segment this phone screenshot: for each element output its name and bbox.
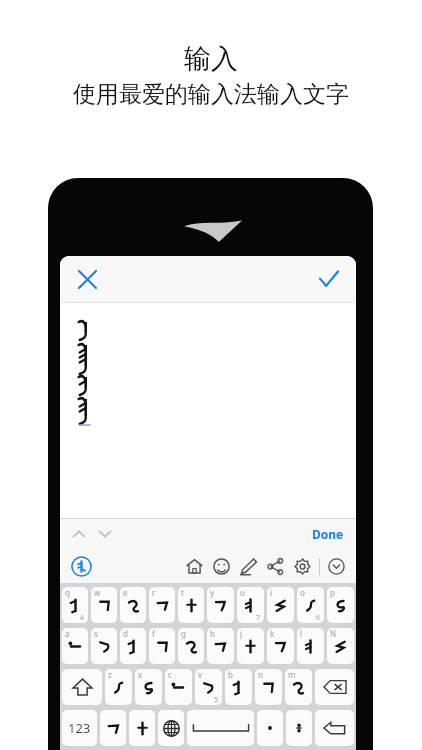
staticText: o [300, 587, 305, 598]
staticText: e [123, 587, 128, 598]
staticText: a [65, 628, 70, 639]
staticText: i [270, 587, 273, 598]
button[interactable]: l [297, 628, 324, 664]
staticText: N [330, 628, 337, 639]
button[interactable]: Next [92, 521, 118, 547]
staticText: x [138, 669, 143, 680]
staticText: 4 [80, 613, 85, 623]
button[interactable]: k [267, 628, 294, 664]
button[interactable]: delete [315, 669, 354, 705]
button[interactable]: r [149, 587, 175, 623]
staticText: v [198, 669, 203, 680]
button[interactable]: Settings [289, 553, 316, 580]
button[interactable]: colon [286, 710, 312, 746]
button[interactable]: Draw [235, 553, 262, 580]
button[interactable]: z [105, 669, 132, 705]
staticText: k [270, 628, 275, 639]
staticText: l [300, 628, 303, 639]
staticText: 使用最爱的输入法输入文字 [73, 80, 349, 109]
button[interactable]: Emoji [208, 553, 235, 580]
staticText: c [168, 669, 172, 680]
staticText: g [181, 628, 186, 639]
button[interactable]: x [135, 669, 162, 705]
button[interactable]: u [237, 587, 264, 623]
button[interactable]: Previous [66, 521, 92, 547]
button[interactable]: f [149, 628, 175, 664]
button[interactable]: shift [62, 669, 102, 705]
staticText: z [108, 669, 112, 680]
button[interactable]: globe [158, 710, 184, 746]
staticText: u [240, 587, 245, 598]
button[interactable]: a [62, 628, 88, 664]
staticText: w [94, 587, 101, 598]
staticText: j [240, 628, 243, 639]
button[interactable]: w [91, 587, 117, 623]
button[interactable]: e [120, 587, 146, 623]
button[interactable]: n [255, 669, 282, 705]
button[interactable]: Share [262, 553, 289, 580]
button[interactable]: i [267, 587, 294, 623]
button[interactable]: b [225, 669, 252, 705]
button[interactable]: d [120, 628, 146, 664]
button[interactable]: N [327, 628, 354, 664]
staticText: 输入 [184, 42, 238, 76]
button[interactable] [129, 710, 155, 746]
staticText: q [65, 587, 70, 598]
button[interactable] [100, 710, 126, 746]
button[interactable]: h [207, 628, 234, 664]
button[interactable]: p [327, 587, 354, 623]
staticText: 5 [214, 695, 219, 705]
button[interactable]: space [187, 710, 254, 746]
staticText: f [152, 628, 155, 639]
button[interactable]: c [165, 669, 192, 705]
button[interactable]: v [195, 669, 222, 705]
button[interactable]: s [91, 628, 117, 664]
staticText: b [228, 669, 233, 680]
button[interactable]: Hide keyboard [323, 553, 350, 580]
staticText: 123 [68, 719, 91, 737]
button[interactable]: g [178, 628, 204, 664]
staticText: y [210, 587, 215, 598]
staticText: 7 [256, 613, 261, 623]
staticText: Done [312, 526, 344, 542]
button[interactable]: Confirm [309, 259, 349, 299]
button[interactable]: Done [308, 523, 348, 545]
button[interactable]: j [237, 628, 264, 664]
button[interactable]: o [297, 587, 324, 623]
button[interactable]: y [207, 587, 234, 623]
staticText: n [258, 669, 263, 680]
staticText: m [288, 669, 296, 680]
button[interactable]: q [62, 587, 88, 623]
staticText: 6 [316, 613, 321, 623]
staticText: d [123, 628, 128, 639]
button[interactable]: m [285, 669, 312, 705]
button[interactable]: Home [181, 553, 208, 580]
staticText: t [181, 587, 184, 598]
staticText: h [210, 628, 215, 639]
staticText: s [94, 628, 98, 639]
button[interactable]: 123 [62, 710, 97, 746]
button[interactable]: Mongolian keyboard [67, 552, 95, 580]
button[interactable]: Cancel [67, 259, 107, 299]
button[interactable]: return [315, 710, 354, 746]
staticText: r [152, 587, 156, 598]
button[interactable]: dot [257, 710, 283, 746]
button[interactable]: t [178, 587, 204, 623]
staticText: p [330, 587, 335, 598]
